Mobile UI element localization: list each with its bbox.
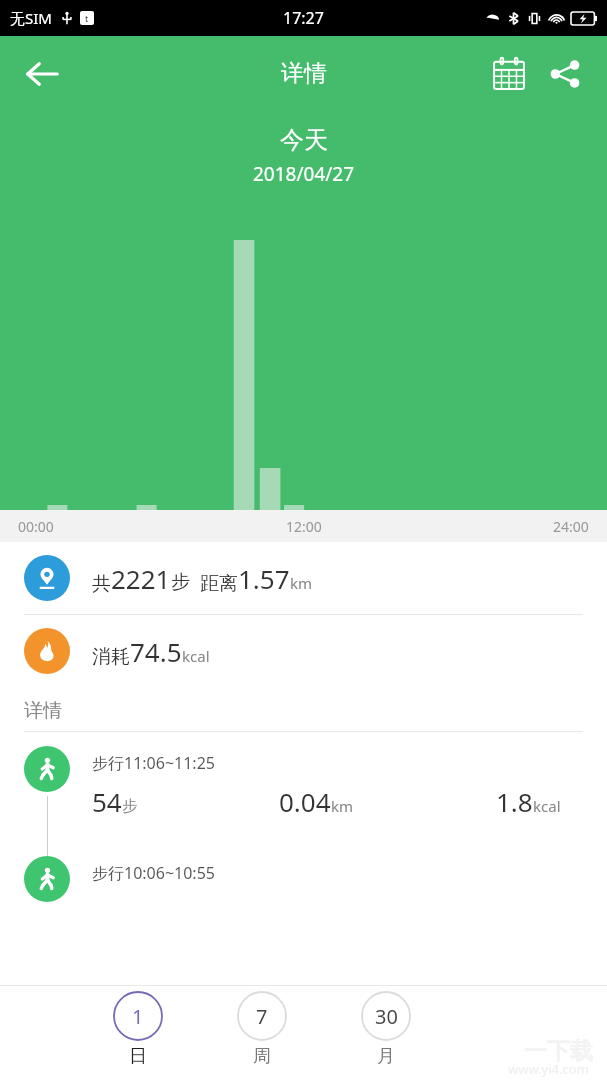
staticText: 步行10:06~10:55 [92, 862, 215, 884]
staticText: 7 [256, 1003, 268, 1030]
button[interactable]: 30 [356, 991, 416, 1068]
staticText: 74.5 [130, 634, 182, 669]
staticText: 30 [375, 1003, 398, 1030]
staticText: 1.8 [496, 784, 533, 819]
staticText: 日 [129, 1045, 147, 1068]
staticText: 24:00 [553, 517, 589, 536]
staticText: 12:00 [286, 517, 322, 536]
staticText: 步 [122, 797, 137, 816]
staticText: 步 [171, 570, 190, 594]
staticText: 一下载 [524, 1037, 593, 1066]
staticText: 0.04 [279, 784, 331, 819]
staticText: kcal [182, 646, 210, 666]
staticText: 17:27 [283, 7, 324, 29]
staticText: t [85, 12, 89, 24]
button[interactable]: 7 [232, 991, 292, 1068]
button[interactable]: Calendar [483, 48, 535, 100]
staticText: 周 [253, 1045, 271, 1068]
staticText: 00:00 [18, 517, 54, 536]
button[interactable]: Back [14, 46, 70, 102]
button[interactable]: 消耗 [0, 615, 607, 687]
staticText: 无SIM [10, 8, 52, 28]
staticText: 距离 [200, 572, 238, 596]
staticText: 今天 [280, 125, 328, 155]
staticText: 2018/04/27 [253, 161, 355, 187]
staticText: 1 [132, 1003, 144, 1030]
staticText: 54 [92, 784, 122, 819]
staticText: 1.57 [238, 561, 290, 596]
staticText: 月 [377, 1045, 395, 1068]
button[interactable]: 共 [0, 542, 607, 614]
button[interactable]: Share [539, 48, 591, 100]
button[interactable]: 步行11:06~11:25 [0, 746, 607, 856]
staticText: km [331, 796, 354, 816]
staticText: 消耗 [92, 645, 130, 669]
staticText: 2221 [111, 561, 171, 596]
button[interactable]: 步行10:06~10:55 [0, 856, 607, 902]
staticText: 详情 [281, 59, 327, 88]
staticText: 详情 [24, 699, 62, 723]
staticText: km [290, 573, 313, 593]
staticText: www.yi4.com [508, 1060, 589, 1078]
staticText: 步行11:06~11:25 [92, 752, 215, 774]
staticText: 共 [92, 572, 111, 596]
staticText: kcal [533, 796, 561, 816]
button[interactable]: 1 [108, 991, 168, 1068]
